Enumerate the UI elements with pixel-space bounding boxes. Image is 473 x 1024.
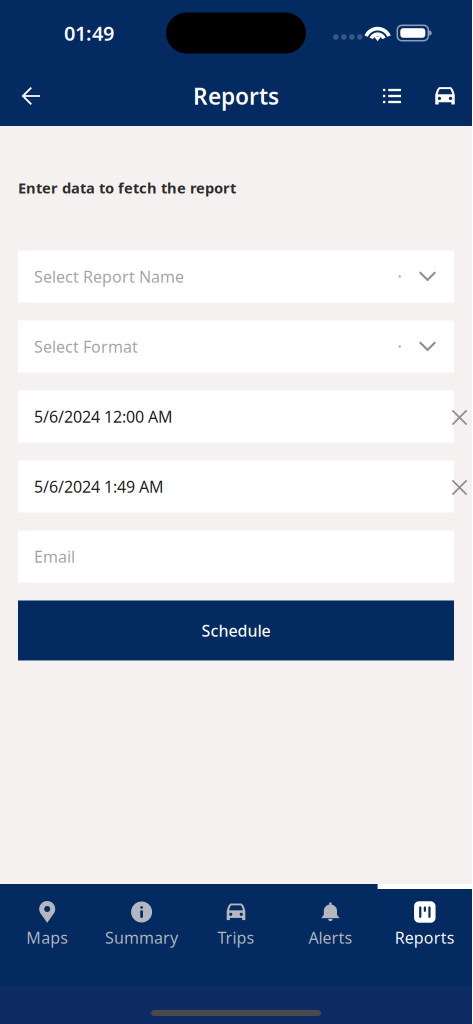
button[interactable]: Clear date [444,391,473,443]
staticText: 5/6/2024 12:00 AM [34,406,173,427]
button[interactable]: Email [18,530,454,582]
staticText: Reports [395,927,455,948]
button[interactable]: 5/6/2024 1:49 AM [18,460,454,512]
staticText: Trips [217,927,254,948]
staticText: Select Report Name [34,266,184,287]
button[interactable]: Select Report Name [18,250,454,302]
staticText: Summary [105,927,178,948]
staticText: 01:49 [64,20,114,46]
staticText: Email [34,546,75,567]
button[interactable]: Summary [94,884,189,987]
staticText: 5/6/2024 1:49 AM [34,476,164,497]
button[interactable]: Trips [189,884,283,987]
button[interactable]: Reports [378,884,472,987]
staticText: Alerts [308,927,352,948]
button[interactable]: Select Format [18,320,454,372]
button[interactable]: Maps [0,884,94,987]
button[interactable]: Alerts [283,884,378,987]
button[interactable]: Vehicles [418,66,472,126]
button[interactable]: Clear date [444,461,473,513]
staticText: Schedule [201,620,270,641]
button[interactable]: List view [366,66,418,126]
staticText: Maps [26,927,68,948]
staticText: Reports [193,81,279,111]
staticText: Select Format [34,336,138,357]
staticText: Enter data to fetch the report [18,178,236,197]
button[interactable]: Back [0,66,62,126]
button[interactable]: 5/6/2024 12:00 AM [18,390,454,442]
button[interactable]: Schedule [18,600,454,660]
